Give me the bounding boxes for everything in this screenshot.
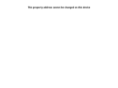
staticText: This property address cannot be changed …: [0, 0, 118, 88]
